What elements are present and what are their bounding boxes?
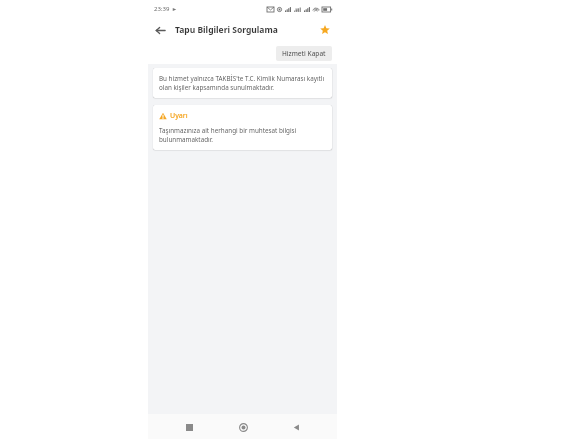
staticText: 23:39 (154, 5, 170, 13)
staticText: Taşınmazınıza ait herhangi bir muhtesat … (159, 126, 326, 144)
staticText: Tapu Bilgileri Sorgulama (175, 24, 278, 36)
button[interactable]: Hizmeti Kapat (276, 46, 332, 61)
button[interactable]: Geri (284, 415, 308, 439)
button[interactable]: Ana ekran (231, 415, 255, 439)
button[interactable]: Favorilere ekle (313, 18, 337, 42)
button[interactable]: Uyarı (153, 105, 332, 150)
staticText: Uyarı (170, 111, 188, 121)
button[interactable]: Bu hizmet yalnızca TAKBİS'te T.C. Kimlik… (153, 68, 332, 98)
button[interactable]: Geri (148, 18, 172, 42)
staticText: Hizmeti Kapat (282, 49, 326, 58)
button[interactable]: Son uygulamalar (177, 415, 201, 439)
staticText: Bu hizmet yalnızca TAKBİS'te T.C. Kimlik… (159, 74, 326, 92)
